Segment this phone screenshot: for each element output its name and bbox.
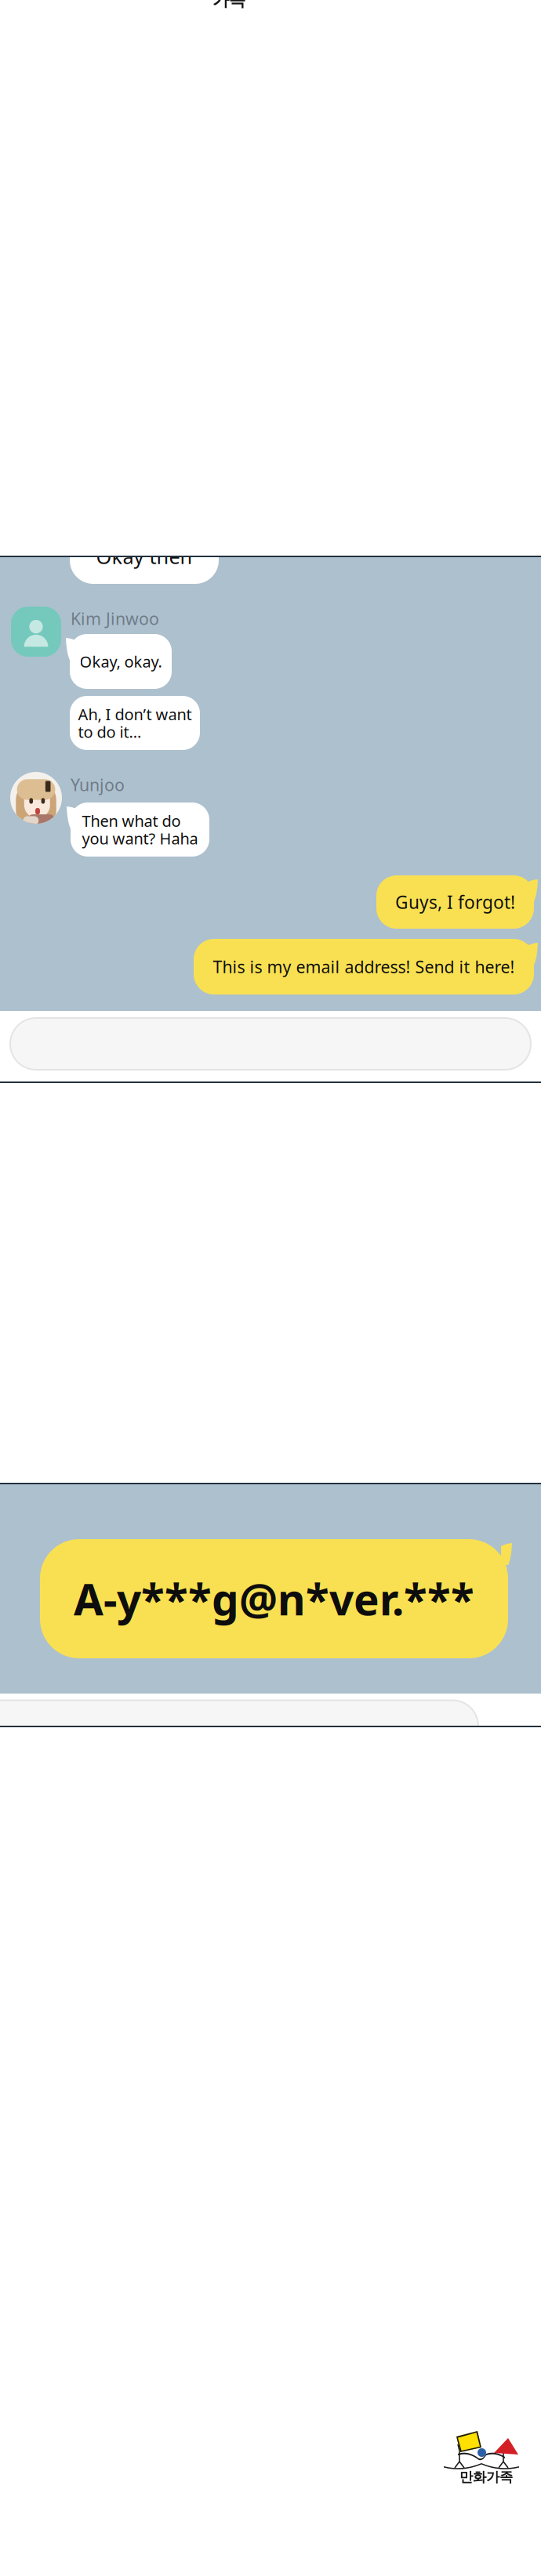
button[interactable]: Message input field [10, 1018, 531, 1070]
staticText: Ah, I don’t want to do it… [78, 704, 192, 742]
staticText: 만화가족 [459, 2469, 513, 2485]
staticText: Yunjoo [71, 774, 125, 796]
staticText: This is my email address! Send it here! [213, 956, 515, 978]
staticText: Then what do you want? Haha [82, 810, 198, 849]
staticText: Guys, I forgot! [395, 890, 515, 914]
staticText: Okay, okay. [80, 651, 162, 672]
staticText: A-y***g@n*ver.*** [74, 1570, 474, 1627]
staticText: 가족 [212, 0, 245, 10]
staticText: Okay then [96, 543, 192, 570]
staticText: Kim Jinwoo [71, 607, 159, 630]
